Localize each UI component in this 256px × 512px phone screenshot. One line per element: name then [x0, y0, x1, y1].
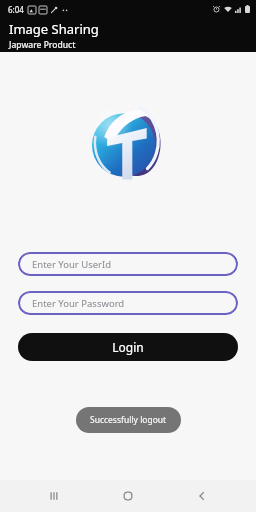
staticText: Successfully logout [90, 414, 167, 426]
staticText: Image Sharing [9, 20, 99, 38]
staticText: Enter Your UserId [32, 258, 112, 271]
staticText: Japware Product [9, 39, 76, 51]
button[interactable]: Back [182, 480, 222, 512]
button[interactable]: Enter Your Password [18, 291, 238, 315]
staticText: 6:04 [8, 4, 24, 15]
button[interactable]: Recents [34, 480, 74, 512]
button[interactable]: Enter Your UserId [18, 252, 238, 276]
staticText: Enter Your Password [32, 297, 125, 310]
button[interactable]: Login [18, 333, 238, 361]
button[interactable]: Home [108, 480, 148, 512]
staticText: Login [112, 339, 144, 355]
